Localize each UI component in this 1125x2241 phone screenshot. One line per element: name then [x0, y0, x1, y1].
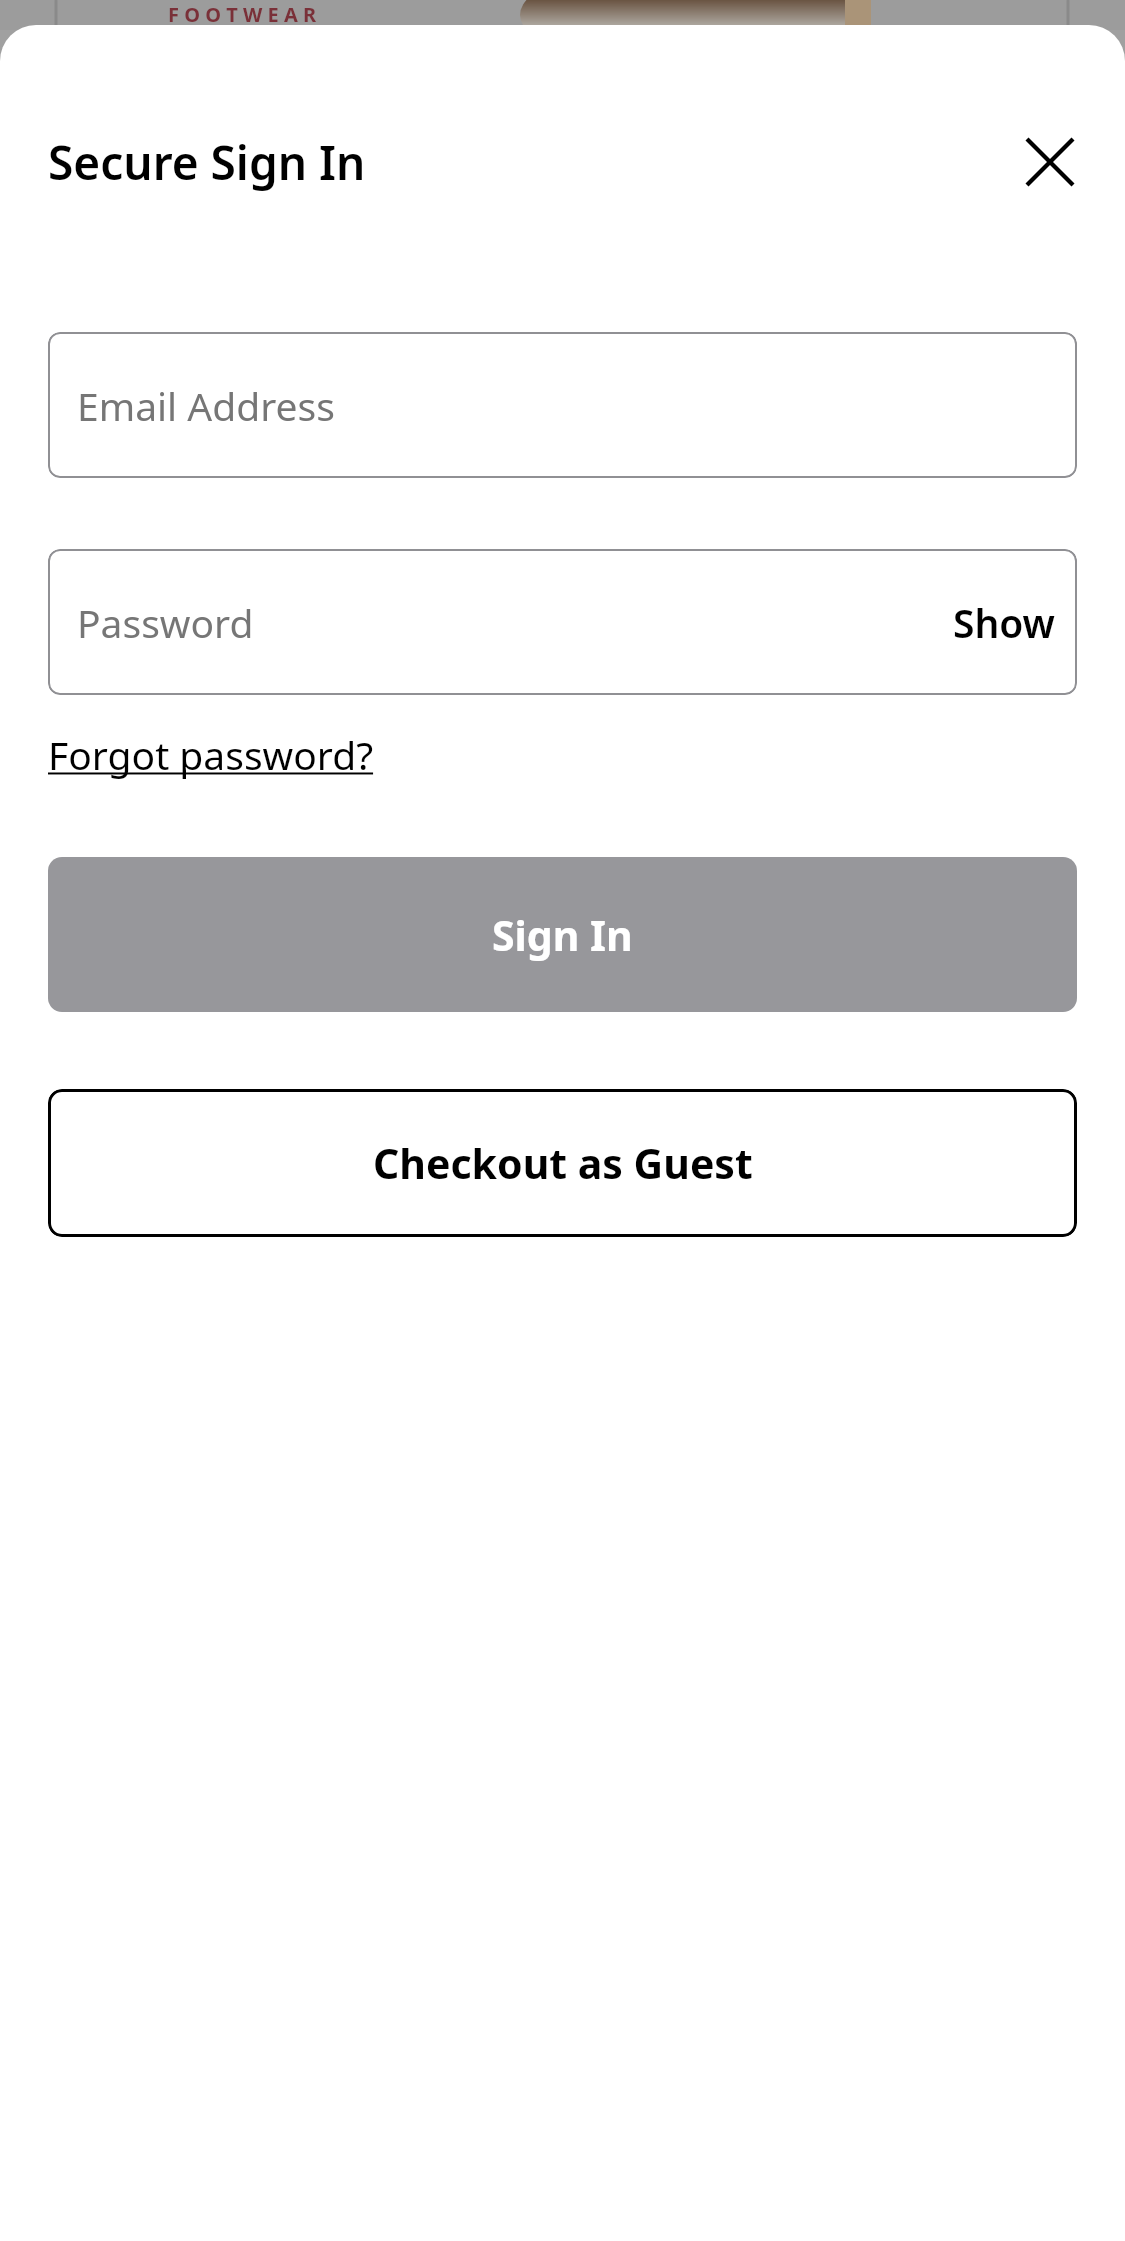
staticText: Checkout as Guest [373, 1135, 753, 1191]
staticText: F O O T W E A R [168, 1, 317, 28]
staticText: Password [77, 596, 931, 649]
button[interactable]: Checkout as Guest [48, 1089, 1077, 1237]
button[interactable]: Password [48, 549, 1077, 695]
button[interactable]: Sign In [48, 857, 1077, 1012]
staticText: Sign In [492, 907, 633, 963]
staticText: Email Address [77, 379, 335, 432]
button[interactable]: Email Address [48, 332, 1077, 478]
button[interactable]: Forgot password? [48, 728, 374, 781]
button[interactable]: Show [931, 582, 1077, 663]
staticText: Forgot password? [48, 728, 374, 781]
staticText: Show [953, 596, 1055, 649]
button[interactable]: Close [1017, 129, 1083, 195]
staticText: Secure Sign In [48, 131, 366, 194]
